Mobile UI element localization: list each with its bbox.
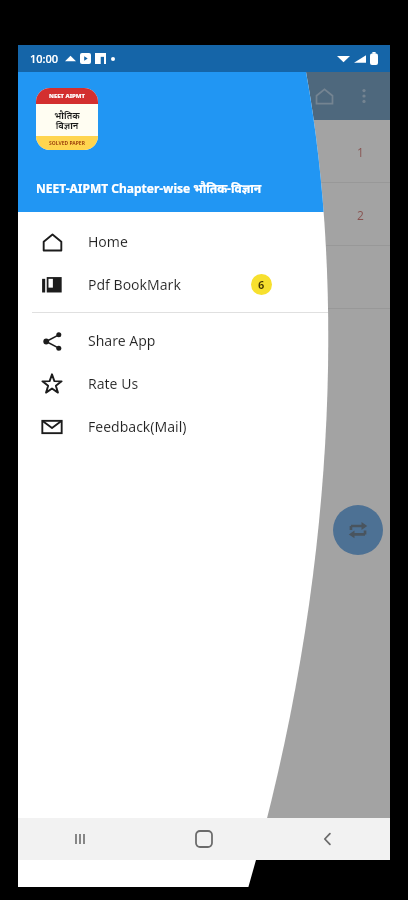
staticText: 6 <box>258 277 265 292</box>
button[interactable]: More options <box>344 76 384 116</box>
button[interactable]: Recents <box>18 818 142 860</box>
staticText: Rate Us <box>88 374 139 393</box>
staticText: NEET AIPMT <box>49 92 85 100</box>
staticText: 10:00 <box>30 51 59 66</box>
button[interactable]: Home <box>142 818 266 860</box>
staticText: 2 <box>357 207 364 223</box>
button[interactable]: Feedback(Mail) <box>18 405 338 448</box>
button[interactable]: Home <box>18 220 338 263</box>
button[interactable]: Back <box>266 818 390 860</box>
staticText: SOLVED PAPER <box>49 140 85 147</box>
button[interactable]: Share App <box>18 319 338 362</box>
staticText: Feedback(Mail) <box>88 417 187 436</box>
staticText: भौतिक विज्ञान <box>54 109 80 131</box>
button[interactable]: Pdf BookMark <box>18 263 338 306</box>
button[interactable]: Rate Us <box>18 362 338 405</box>
staticText: Pdf BookMark <box>88 275 181 294</box>
button[interactable]: Home <box>304 76 344 116</box>
staticText: 1 <box>357 144 364 160</box>
staticText: Home <box>88 232 128 251</box>
button[interactable]: Shuffle <box>333 505 383 555</box>
staticText: NEET-AIPMT Chapter-wise भौतिक-विज्ञान <box>36 180 262 196</box>
staticText: Share App <box>88 331 156 350</box>
